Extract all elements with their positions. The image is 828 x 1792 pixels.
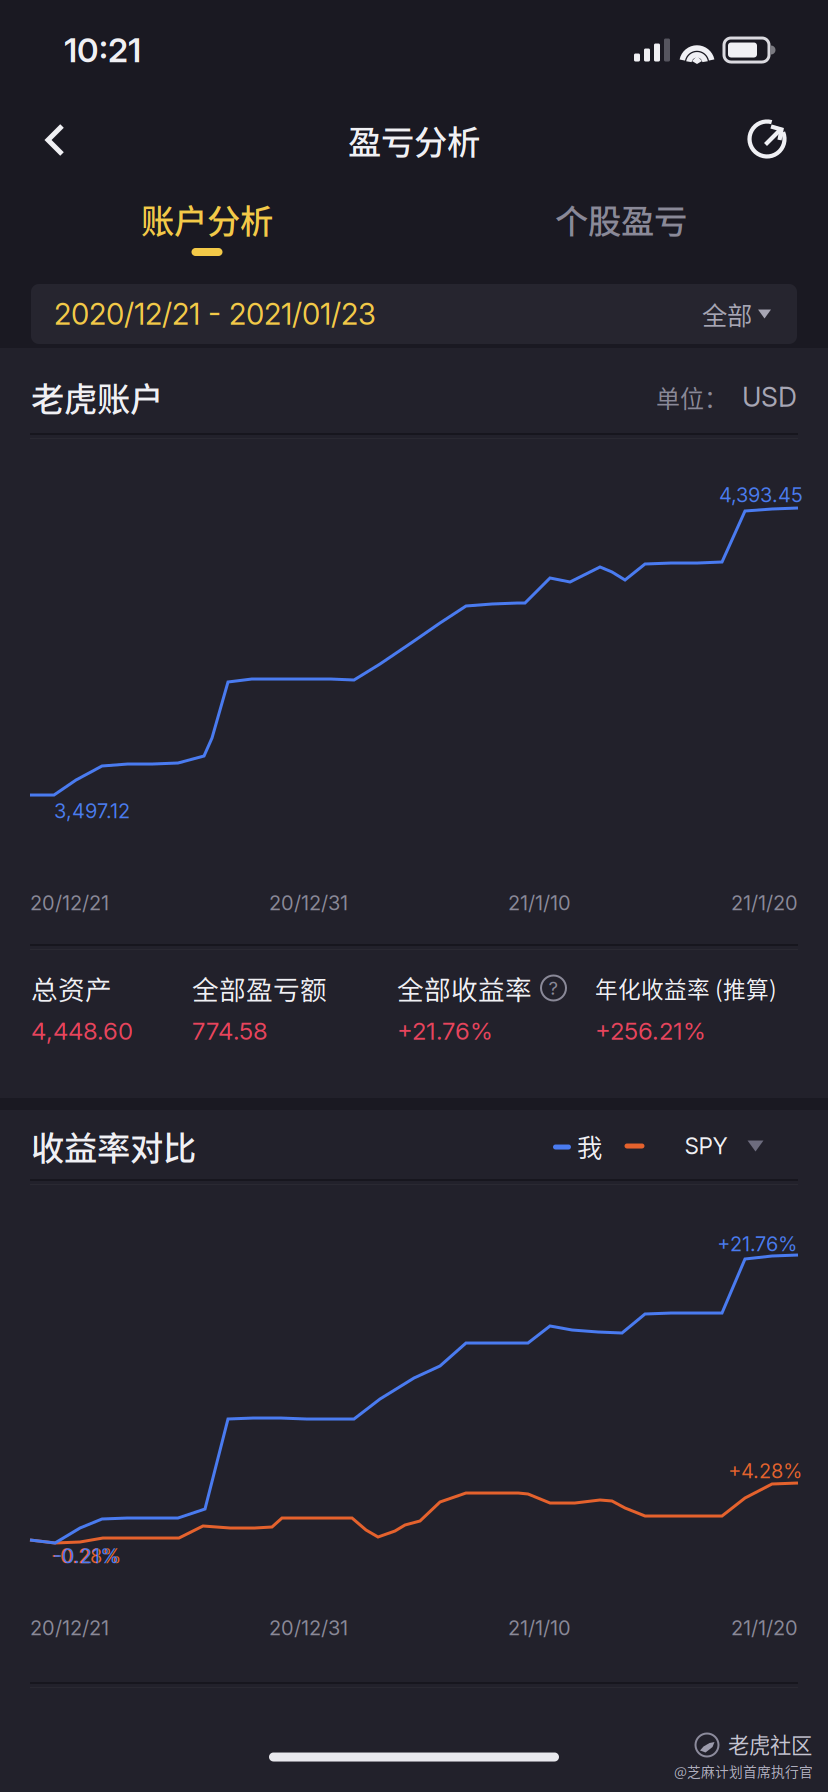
staticText: 年化收益率 (推算) <box>595 972 777 1004</box>
staticText: @芝麻计划首席执行官 <box>674 1761 813 1781</box>
staticText: ? <box>548 977 558 999</box>
staticText: USD <box>742 381 797 413</box>
staticText: -0.28% <box>51 1544 121 1568</box>
staticText: 10:21 <box>64 30 141 70</box>
button[interactable]: 账户分析 <box>0 172 414 266</box>
staticText: 21/1/20 <box>731 1616 798 1640</box>
staticText: +21.76% <box>717 1232 797 1256</box>
staticText: 4,448.60 <box>31 1016 133 1045</box>
staticText: 3,497.12 <box>54 799 130 823</box>
staticText: 21/1/10 <box>508 891 571 915</box>
staticText: 老虎社区 <box>728 1729 812 1759</box>
staticText: 个股盈亏 <box>555 195 687 243</box>
staticText: SPY <box>684 1132 727 1160</box>
staticText: +21.76% <box>397 1016 493 1045</box>
staticText: 单位： <box>656 380 728 414</box>
staticText: 20/12/21 <box>30 1616 109 1640</box>
button[interactable]: 2020/12/21 - 2021/01/23 <box>31 284 797 344</box>
staticText: 21/1/20 <box>731 891 798 915</box>
button[interactable]: 刷新 <box>725 102 811 178</box>
button[interactable]: 个股盈亏 <box>414 172 828 266</box>
staticText: 总资产 <box>31 969 112 1007</box>
staticText: 21/1/10 <box>508 1616 571 1640</box>
staticText: 账户分析 <box>141 195 273 243</box>
staticText: 全部 <box>702 296 752 332</box>
staticText: +256.21% <box>595 1016 706 1045</box>
staticText: 盈亏分析 <box>348 116 480 164</box>
staticText: 2020/12/21 - 2021/01/23 <box>54 296 376 332</box>
staticText: 20/12/21 <box>30 891 109 915</box>
staticText: +4.28% <box>728 1459 802 1483</box>
staticText: 全部盈亏额 <box>192 969 327 1007</box>
staticText: 我 <box>577 1128 602 1164</box>
staticText: 20/12/31 <box>269 1616 348 1640</box>
staticText: 774.58 <box>192 1016 268 1045</box>
staticText: -0.21% <box>53 1544 119 1568</box>
staticText: 老虎账户 <box>31 373 163 421</box>
staticText: 4,393.45 <box>719 483 803 507</box>
staticText: 全部收益率 <box>397 969 532 1007</box>
button[interactable]: SPY <box>624 1118 769 1174</box>
button[interactable]: 返回 <box>12 102 98 178</box>
staticText: 20/12/31 <box>269 891 348 915</box>
staticText: 收益率对比 <box>31 1122 196 1170</box>
